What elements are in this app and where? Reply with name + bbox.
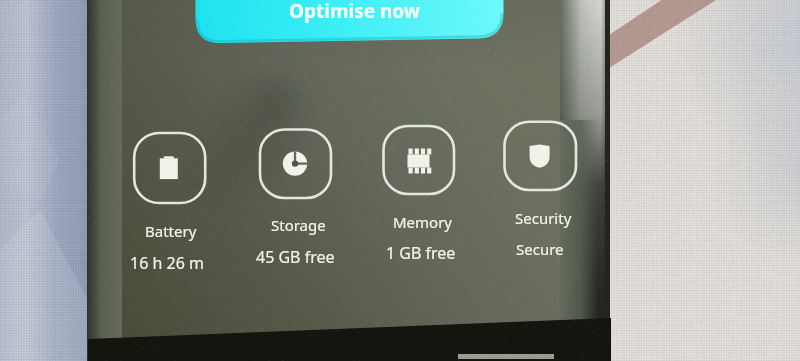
staticText: 1 GB free xyxy=(386,242,456,264)
staticText: Optimise now xyxy=(289,0,421,24)
button[interactable]: Battery 16 h 26 m xyxy=(128,130,212,270)
staticText: Memory xyxy=(393,212,453,232)
staticText: 16 h 26 m xyxy=(130,252,204,274)
staticText: Secure xyxy=(516,239,564,259)
button[interactable]: Security Secure xyxy=(499,119,583,259)
staticText: 45 GB free xyxy=(256,246,335,268)
button[interactable]: Memory 1 GB free xyxy=(378,123,460,263)
staticText: Security xyxy=(515,208,572,228)
staticText: Battery xyxy=(145,221,197,241)
button[interactable]: Storage 45 GB free xyxy=(254,127,338,267)
button[interactable]: Optimise now xyxy=(195,0,504,44)
staticText: Storage xyxy=(271,215,326,235)
